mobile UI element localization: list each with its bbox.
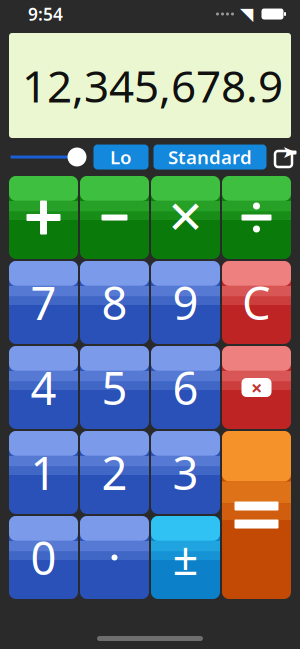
button[interactable]: Backspace xyxy=(222,346,291,429)
button[interactable]: Multiply xyxy=(151,176,220,259)
staticText: 9:54 xyxy=(28,2,63,25)
button[interactable]: 4 xyxy=(9,346,78,429)
staticText: ➤ xyxy=(282,142,297,162)
button[interactable]: Equals xyxy=(222,431,291,599)
button[interactable]: 8 xyxy=(80,261,149,344)
button[interactable]: 9 xyxy=(151,261,220,344)
staticText: 4 xyxy=(30,357,56,418)
button[interactable]: Lo xyxy=(93,144,148,169)
staticText: 12,345,678.9 xyxy=(22,56,283,115)
button[interactable]: Standard xyxy=(153,144,266,169)
button[interactable]: Value slider xyxy=(8,144,88,170)
button[interactable]: 1 xyxy=(9,431,78,514)
button[interactable]: 2 xyxy=(80,431,149,514)
staticText: 8 xyxy=(101,272,127,333)
staticText: Lo xyxy=(110,145,132,169)
staticText: C xyxy=(242,272,271,333)
staticText: 1 xyxy=(30,442,56,503)
button[interactable]: Share xyxy=(270,144,296,170)
staticText: 3 xyxy=(172,442,198,503)
staticText: ✕ xyxy=(166,192,204,243)
button[interactable]: 3 xyxy=(151,431,220,514)
staticText: 9 xyxy=(172,272,198,333)
staticText: ± xyxy=(172,527,198,588)
button[interactable]: Subtract xyxy=(80,176,149,259)
staticText: 0 xyxy=(30,527,56,588)
staticText: 7 xyxy=(30,272,56,333)
button[interactable]: Divide xyxy=(222,176,291,259)
staticText: Standard xyxy=(168,145,252,169)
button[interactable]: 7 xyxy=(9,261,78,344)
staticText: ◥ xyxy=(240,4,253,24)
staticText: 6 xyxy=(172,357,198,418)
button[interactable]: 0 xyxy=(9,516,78,599)
button[interactable]: Add xyxy=(9,176,78,259)
button[interactable]: 6 xyxy=(151,346,220,429)
staticText: × xyxy=(251,374,262,401)
button[interactable]: Plus minus xyxy=(151,516,220,599)
staticText: 5 xyxy=(101,357,127,418)
button[interactable]: 5 xyxy=(80,346,149,429)
button[interactable]: C xyxy=(222,261,291,344)
staticText: 2 xyxy=(101,442,127,503)
button[interactable]: Decimal point xyxy=(80,516,149,599)
